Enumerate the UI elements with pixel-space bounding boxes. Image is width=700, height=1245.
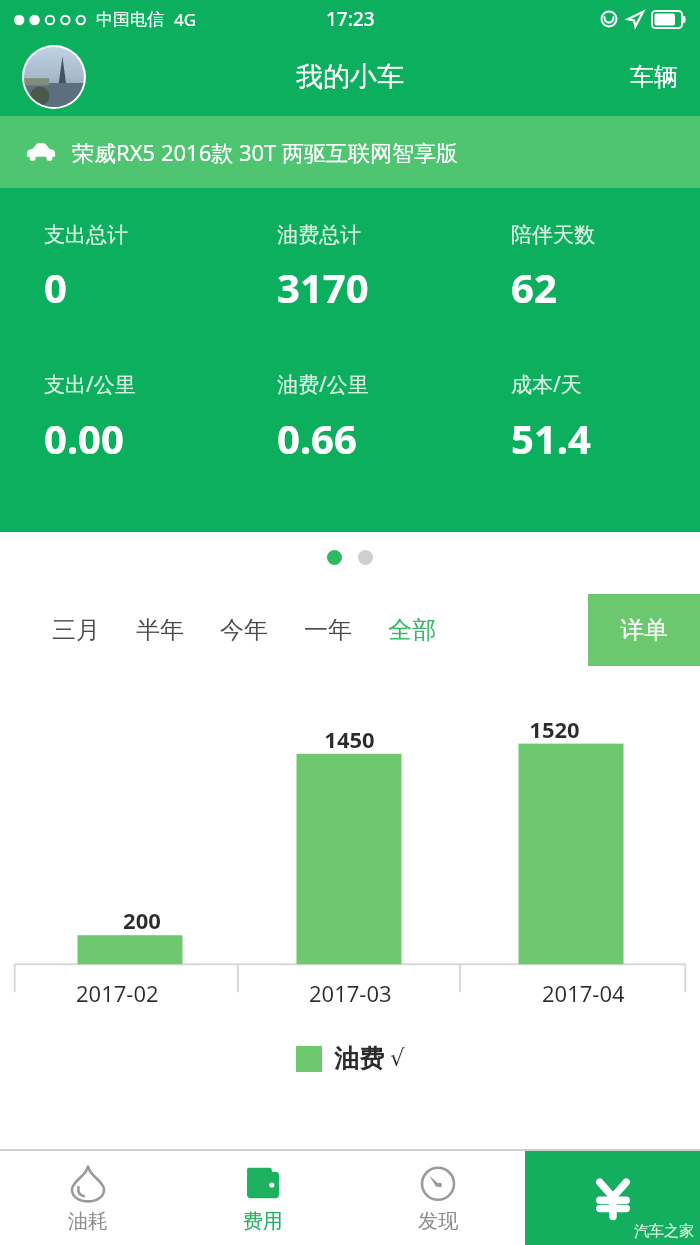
staticText: 支出总计 bbox=[44, 222, 128, 248]
button[interactable]: 荣威RX5 2016款 30T 两驱互联网智享版 bbox=[0, 116, 700, 188]
staticText: 中国电信 bbox=[96, 9, 164, 30]
staticText: 三月 bbox=[52, 615, 100, 645]
button[interactable]: 全部 bbox=[370, 605, 454, 655]
button[interactable]: 三月 bbox=[34, 605, 118, 655]
staticText: 支出/公里 bbox=[44, 370, 136, 399]
staticText: 17:23 bbox=[326, 6, 375, 32]
staticText: 一年 bbox=[304, 615, 352, 645]
button[interactable]: 详单 bbox=[588, 594, 700, 666]
staticText: 荣威RX5 2016款 30T 两驱互联网智享版 bbox=[72, 137, 459, 167]
staticText: 油费总计 bbox=[277, 222, 361, 248]
staticText: 今年 bbox=[220, 615, 268, 645]
staticText: 费用 bbox=[243, 1209, 283, 1234]
staticText: 发现 bbox=[418, 1209, 458, 1234]
button[interactable]: 半年 bbox=[118, 605, 202, 655]
button[interactable]: 发现 bbox=[350, 1151, 525, 1245]
staticText: 51.4 bbox=[511, 411, 591, 465]
staticText: 成本/天 bbox=[511, 370, 582, 399]
staticText: 详单 bbox=[620, 615, 668, 645]
staticText: 油费 bbox=[334, 1043, 384, 1074]
staticText: 62 bbox=[511, 260, 557, 314]
staticText: 2017-03 bbox=[309, 978, 392, 1008]
button[interactable]: 油费 bbox=[0, 1043, 700, 1074]
staticText: 2017-04 bbox=[542, 978, 625, 1008]
staticText: 4G bbox=[174, 8, 197, 31]
button[interactable]: Add expense bbox=[525, 1151, 700, 1245]
staticText: 1520 bbox=[529, 714, 580, 744]
staticText: 汽车之家 bbox=[634, 1222, 694, 1241]
staticText: 200 bbox=[123, 905, 161, 935]
staticText: 我的小车 bbox=[296, 60, 404, 94]
staticText: 陪伴天数 bbox=[511, 222, 595, 248]
button[interactable]: Profile bbox=[24, 47, 84, 107]
staticText: 0.66 bbox=[277, 411, 357, 465]
staticText: 0.00 bbox=[44, 411, 124, 465]
staticText: 半年 bbox=[136, 615, 184, 645]
staticText: 油费/公里 bbox=[277, 370, 369, 399]
staticText: 2017-02 bbox=[76, 978, 159, 1008]
button[interactable]: 油耗 bbox=[0, 1151, 175, 1245]
staticText: 1450 bbox=[324, 724, 375, 754]
button[interactable]: 一年 bbox=[286, 605, 370, 655]
button[interactable]: 费用 bbox=[175, 1151, 350, 1245]
button[interactable]: 今年 bbox=[202, 605, 286, 655]
staticText: 0 bbox=[44, 260, 67, 314]
staticText: 油耗 bbox=[68, 1209, 108, 1234]
button[interactable]: 车辆 bbox=[608, 50, 700, 104]
staticText: √ bbox=[390, 1045, 405, 1072]
staticText: 3170 bbox=[277, 260, 369, 314]
staticText: 全部 bbox=[388, 615, 436, 645]
staticText: 车辆 bbox=[630, 62, 678, 92]
